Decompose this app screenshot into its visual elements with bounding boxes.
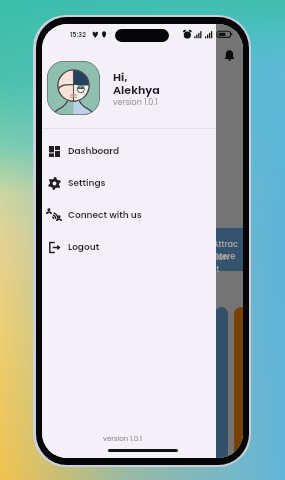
button[interactable]: Dashboard	[42, 135, 216, 167]
button[interactable]: Settings	[42, 167, 216, 199]
button[interactable]: Notifications	[221, 47, 237, 63]
staticText: Settings	[68, 177, 106, 190]
staticText: Attraction	[213, 239, 240, 263]
staticText: Connect with us	[68, 209, 142, 222]
staticText: version 1.0.1	[113, 97, 158, 108]
staticText: Hi,	[113, 69, 128, 84]
staticText: Dashboard	[68, 145, 120, 158]
staticText: interest	[212, 251, 239, 275]
staticText: 15:32	[70, 30, 86, 39]
staticText: version 1.0.1	[103, 434, 142, 444]
button[interactable]: Connect with us	[42, 199, 216, 231]
staticText: Alekhya	[113, 82, 160, 97]
staticText: Logout	[68, 241, 100, 254]
button[interactable]: Logout	[42, 231, 216, 263]
